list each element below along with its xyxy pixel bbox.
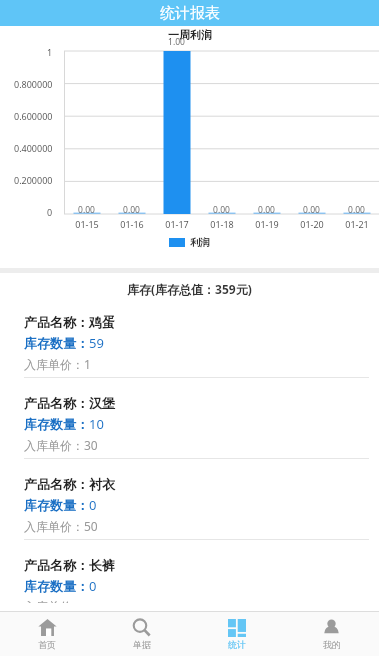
button[interactable]: 我的 (284, 612, 379, 656)
staticText: 01-21 (345, 218, 369, 230)
staticText: 0.800000 (14, 78, 53, 90)
staticText: 0.00 (78, 204, 95, 216)
staticText: 01-17 (165, 218, 189, 230)
staticText: 1 (84, 356, 91, 372)
staticText: 入库单价： (24, 438, 84, 453)
staticText: 50 (84, 518, 98, 534)
staticText: 库存数量： (24, 578, 89, 594)
staticText: 1 (47, 46, 53, 58)
staticText: 30 (84, 437, 98, 453)
staticText: 入库单价： (24, 599, 84, 603)
staticText: 59 (89, 334, 104, 352)
staticText: 产品名称： (24, 476, 89, 492)
button[interactable]: 统计 (189, 612, 284, 656)
staticText: 0.00 (258, 204, 275, 216)
staticText: 0.600000 (14, 110, 53, 122)
staticText: 利润 (190, 236, 210, 249)
staticText: 入库单价： (24, 357, 84, 372)
staticText: 衬衣 (89, 476, 115, 492)
staticText: 统计报表 (160, 4, 220, 23)
staticText: 库存数量： (24, 416, 89, 432)
staticText: 10 (89, 415, 104, 433)
staticText: 一周利润 (168, 28, 212, 42)
staticText: 0.00 (123, 204, 140, 216)
staticText: 0.00 (348, 204, 365, 216)
staticText: 0 (89, 496, 97, 514)
staticText: 库存数量： (24, 335, 89, 351)
staticText: 0.200000 (14, 174, 53, 186)
staticText: 01-16 (120, 218, 144, 230)
staticText: 0 (89, 577, 97, 595)
staticText: 0.00 (213, 204, 230, 216)
staticText: 0.00 (303, 204, 320, 216)
staticText: 首页 (38, 639, 56, 650)
button[interactable]: 产品名称： (10, 467, 369, 548)
staticText: 产品名称： (24, 395, 89, 411)
staticText: 0 (47, 206, 53, 218)
staticText: 01-19 (255, 218, 279, 230)
staticText: 长裤 (89, 557, 115, 573)
staticText: 1.00 (168, 36, 185, 48)
staticText: 统计 (228, 639, 246, 650)
staticText: 入库单价： (24, 519, 84, 534)
staticText: 产品名称： (24, 314, 89, 330)
button[interactable]: 单据 (94, 612, 189, 656)
button[interactable]: 首页 (0, 612, 94, 656)
staticText: 01-18 (210, 218, 234, 230)
staticText: 产品名称： (24, 557, 89, 573)
staticText: 鸡蛋 (89, 314, 115, 330)
staticText: 库存(库存总值：359元) (127, 281, 252, 297)
staticText: 0.400000 (14, 142, 53, 154)
staticText: 01-20 (300, 218, 324, 230)
button[interactable]: 产品名称： (10, 548, 369, 611)
staticText: 库存数量： (24, 497, 89, 513)
button[interactable]: 产品名称： (10, 386, 369, 467)
staticText: 单据 (133, 639, 151, 650)
staticText: 01-15 (75, 218, 99, 230)
staticText: 汉堡 (89, 395, 115, 411)
button[interactable]: 产品名称： (10, 305, 369, 386)
staticText: 我的 (323, 639, 341, 650)
